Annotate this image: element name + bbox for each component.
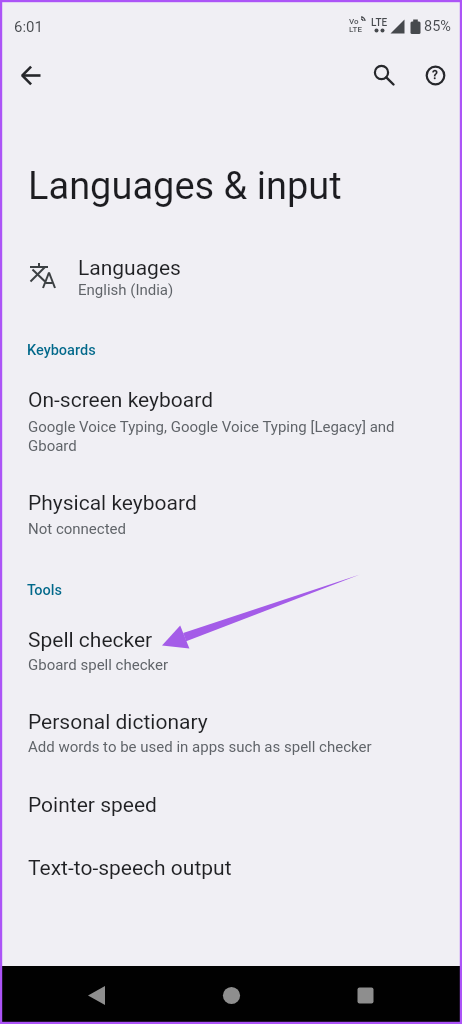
staticText: Languages [78,256,181,281]
staticText: Tools [27,582,63,599]
staticText: ? [432,68,438,82]
staticText: English (India) [78,281,174,299]
button[interactable]: On-screen keyboard [0,374,462,468]
staticText: On-screen keyboard [28,388,214,413]
staticText: Gboard spell checker [28,656,169,674]
staticText: LTE [349,25,362,34]
staticText: Text-to-speech output [28,856,232,881]
staticText: Keyboards [27,342,96,359]
staticText: Vo [349,17,359,26]
staticText: Not connected [28,520,126,538]
staticText: LTE [371,17,388,29]
button[interactable]: Physical keyboard [0,478,462,552]
button[interactable] [341,971,389,1019]
button[interactable] [207,971,255,1019]
button[interactable]: ? [411,51,459,99]
button[interactable]: Pointer speed [0,778,462,836]
staticText: Personal dictionary [28,710,208,735]
button[interactable] [7,51,55,99]
button[interactable]: Spell checker [0,614,462,686]
staticText: Pointer speed [28,793,157,818]
staticText: Spell checker [28,628,153,653]
staticText: Google Voice Typing, Google Voice Typing… [28,418,395,454]
button[interactable]: Languages [0,242,462,318]
button[interactable]: Text-to-speech output [0,840,462,898]
staticText: Physical keyboard [28,491,197,516]
staticText: Languages & input [28,164,342,209]
button[interactable] [73,971,121,1019]
staticText: 85% [424,18,451,35]
staticText: Add words to be used in apps such as spe… [28,738,372,756]
button[interactable] [358,49,406,97]
staticText: 6:01 [14,18,43,36]
button[interactable]: Personal dictionary [0,696,462,770]
